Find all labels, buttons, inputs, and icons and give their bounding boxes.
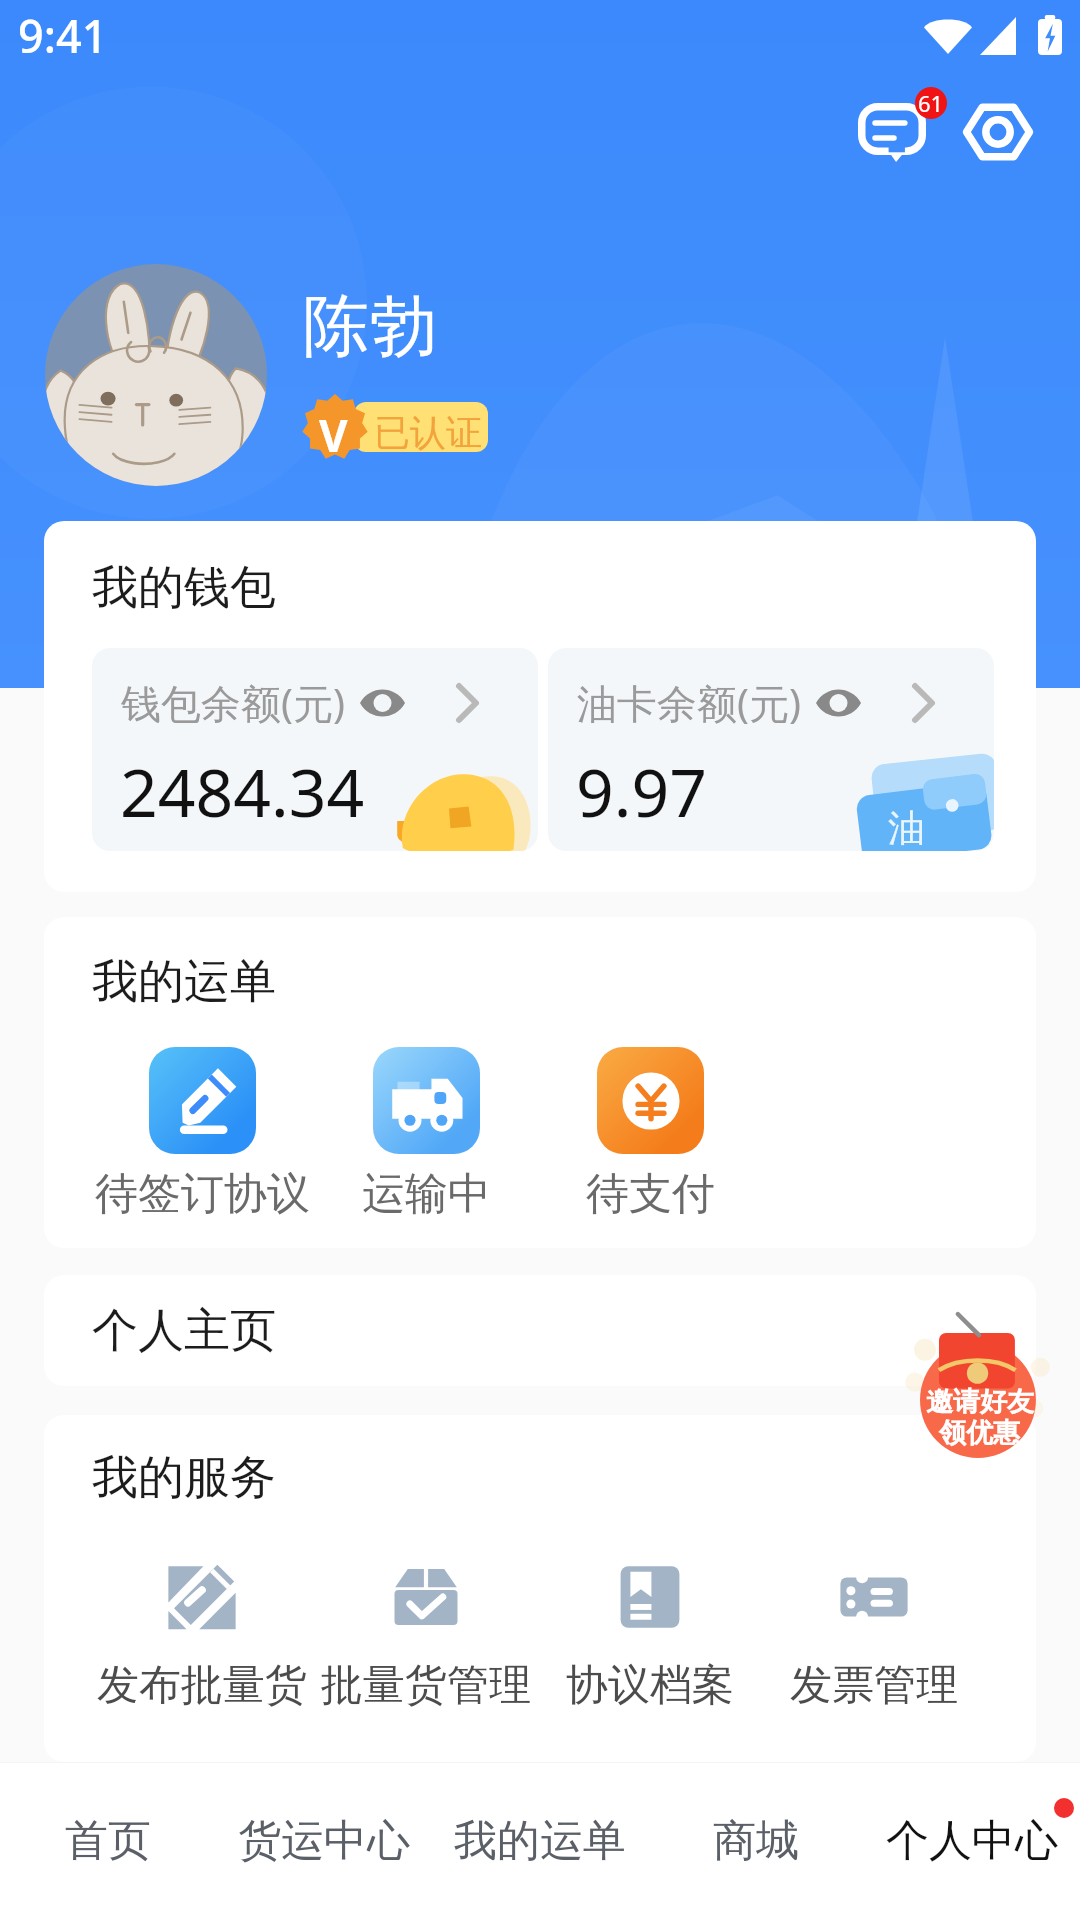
staticText: 协议档案 bbox=[566, 1659, 734, 1712]
button[interactable]: Invite friends bbox=[906, 1306, 1052, 1452]
staticText: 个人主页 bbox=[92, 1302, 276, 1360]
button[interactable]: 我的运单 bbox=[432, 1763, 648, 1920]
staticText: 我的运单 bbox=[92, 953, 276, 1011]
staticText: 9.97 bbox=[576, 746, 707, 836]
staticText: 商城 bbox=[713, 1814, 799, 1868]
staticText: 货运中心 bbox=[238, 1814, 410, 1868]
staticText: 我的服务 bbox=[92, 1449, 276, 1507]
button[interactable]: V bbox=[302, 393, 490, 461]
button[interactable]: 商城 bbox=[648, 1763, 864, 1920]
staticText: 发票管理 bbox=[790, 1659, 958, 1712]
staticText: V bbox=[319, 405, 348, 465]
staticText: 我的钱包 bbox=[92, 559, 276, 617]
staticText: 首页 bbox=[65, 1814, 151, 1868]
button[interactable]: 发票管理 bbox=[762, 1562, 986, 1712]
staticText: 钱包余额(元) bbox=[121, 675, 345, 730]
staticText: 油卡余额(元) bbox=[577, 675, 801, 730]
button[interactable]: 待签订协议 bbox=[90, 1047, 314, 1221]
staticText: 个人中心 bbox=[886, 1814, 1058, 1868]
button[interactable]: Settings bbox=[950, 84, 1046, 180]
staticText: 待签订协议 bbox=[95, 1167, 310, 1221]
button[interactable]: Avatar bbox=[45, 264, 267, 486]
button[interactable]: 批量货管理 bbox=[314, 1562, 538, 1712]
staticText: 邀请好友 bbox=[926, 1385, 1034, 1419]
staticText: 运输中 bbox=[362, 1167, 491, 1221]
button[interactable]: 协议档案 bbox=[538, 1562, 762, 1712]
staticText: 领优惠 bbox=[939, 1416, 1020, 1450]
button[interactable]: 运输中 bbox=[314, 1047, 538, 1221]
button[interactable]: 货运中心 bbox=[216, 1763, 432, 1920]
button[interactable]: Messages bbox=[844, 78, 952, 178]
button[interactable]: 发布批量货 bbox=[90, 1562, 314, 1712]
button[interactable]: 个人主页 bbox=[44, 1275, 1036, 1386]
staticText: 已认证 bbox=[374, 410, 482, 455]
staticText: 批量货管理 bbox=[321, 1659, 531, 1712]
button[interactable]: 个人中心 bbox=[864, 1763, 1080, 1920]
staticText: 发布批量货 bbox=[97, 1659, 307, 1712]
staticText: 我的运单 bbox=[454, 1814, 626, 1868]
staticText: 油 bbox=[888, 805, 925, 851]
button[interactable]: 首页 bbox=[0, 1763, 216, 1920]
button[interactable]: 油卡余额(元) bbox=[548, 648, 994, 851]
button[interactable]: 钱包余额(元) bbox=[92, 648, 538, 851]
staticText: 待支付 bbox=[586, 1167, 715, 1221]
staticText: 陈勃 bbox=[303, 284, 437, 368]
staticText: 9:41 bbox=[18, 5, 108, 66]
staticText: 61 bbox=[918, 88, 944, 118]
staticText: 2484.34 bbox=[120, 746, 365, 836]
button[interactable]: 待支付 bbox=[538, 1047, 762, 1221]
